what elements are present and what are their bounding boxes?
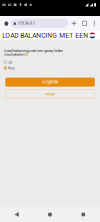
button[interactable]: vorige	[5, 89, 95, 98]
staticText: inschakelen	[4, 52, 24, 57]
staticText: LOAD BALANCING MET EEN	[2, 32, 88, 39]
button[interactable]: More options	[90, 16, 99, 30]
button[interactable]: volgende	[5, 78, 95, 87]
staticText: Nee	[8, 66, 15, 70]
button[interactable]: Recent apps	[67, 207, 100, 222]
button[interactable]: Ja	[4, 60, 64, 64]
staticText: volgende	[42, 79, 58, 85]
button[interactable]: Home	[33, 207, 67, 222]
staticText: 173.36.0.1	[18, 21, 35, 26]
button[interactable]: Nee	[4, 66, 64, 70]
button[interactable]: New tab	[69, 16, 79, 30]
staticText: vorige	[45, 91, 55, 96]
staticText: ?	[26, 53, 27, 56]
button[interactable]: Back	[0, 207, 33, 222]
button[interactable]: 173.36.0.1	[11, 19, 68, 28]
staticText: Ja	[8, 60, 12, 64]
staticText: Load balancing met een groep leden	[4, 48, 63, 53]
button[interactable]: Home	[2, 16, 11, 30]
button[interactable]: Tabs	[79, 16, 90, 30]
